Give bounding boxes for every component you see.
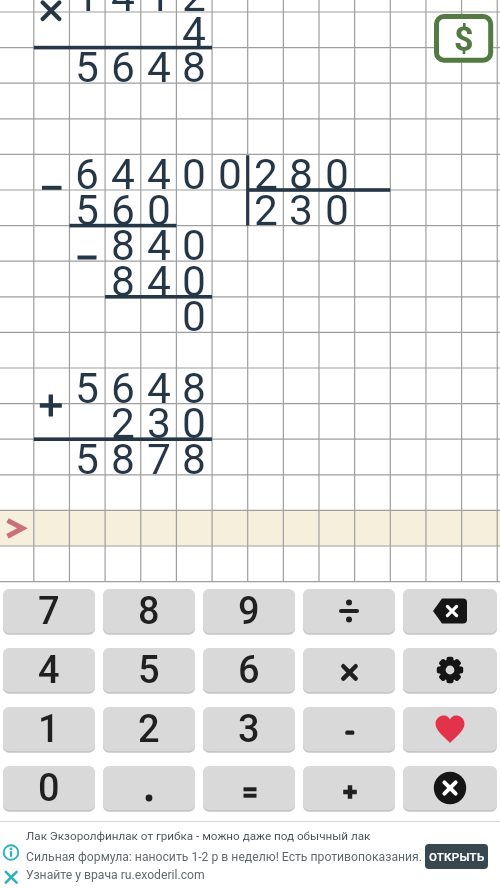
button[interactable] [303,589,395,633]
button[interactable] [403,766,497,810]
button[interactable] [303,648,395,692]
staticText: Узнайте у врача ru.exoderil.com [26,868,205,882]
button[interactable]: 7 [3,589,95,633]
staticText: 4 [147,221,171,271]
staticText: ОТКРЫТЬ [429,850,485,863]
button[interactable]: 4 [3,648,95,692]
staticText: 0 [182,221,206,271]
button[interactable]: $ [434,14,493,63]
staticText: 0 [182,150,206,200]
staticText: 6 [75,150,99,200]
button[interactable]: 5 [103,648,195,692]
button[interactable]: 9 [203,589,295,633]
staticText: 8 [111,435,135,485]
button[interactable] [203,766,295,810]
staticText: 5 [75,186,99,236]
staticText: 0 [325,186,349,236]
button[interactable] [403,648,497,692]
staticText: 6 [238,648,260,692]
staticText: 7 [147,435,171,485]
staticText: 8 [289,150,313,200]
staticText: 1 [75,0,99,22]
staticText: 6 [111,186,135,236]
staticText: 6 [111,43,135,93]
staticText: 0 [218,150,242,200]
button[interactable]: 6 [203,648,295,692]
staticText: 0 [38,766,60,810]
button[interactable]: 1 [3,707,95,751]
staticText: 5 [75,43,99,93]
staticText: 3 [147,399,171,449]
button[interactable]: 0 [3,766,95,810]
staticText: 6 [111,364,135,414]
staticText: 1 [38,707,60,751]
staticText: 3 [238,707,260,751]
staticText: Лак Экзоролфинлак от грибка - можно даже… [26,829,371,843]
staticText: Сильная формула: наносить 1-2 р в неделю… [26,850,423,864]
staticText: 4 [147,257,171,307]
staticText: 8 [182,364,206,414]
staticText: 8 [111,221,135,271]
staticText: 0 [182,257,206,307]
staticText: 9 [238,589,260,633]
staticText: 5 [75,364,99,414]
staticText: 4 [147,364,171,414]
staticText: 2 [182,0,206,22]
button[interactable]: 2 [103,707,195,751]
staticText: 4 [38,648,60,692]
staticText: 0 [182,399,206,449]
staticText: 0 [147,186,171,236]
staticText: 0 [325,150,349,200]
staticText: 8 [138,589,160,633]
staticText: 8 [182,43,206,93]
staticText: 7 [38,589,60,633]
button[interactable] [403,589,497,633]
button[interactable] [303,707,395,751]
staticText: 4 [111,150,135,200]
button[interactable]: 3 [203,707,295,751]
staticText: $ [454,18,474,58]
staticText: 5 [138,648,160,692]
staticText: 2 [254,186,278,236]
staticText: 8 [182,435,206,485]
staticText: 0 [182,292,206,342]
button[interactable] [403,707,497,751]
staticText: 5 [75,435,99,485]
button[interactable]: 8 [103,589,195,633]
staticText: 2 [111,399,135,449]
staticText: 4 [182,8,206,58]
staticText: 2 [254,150,278,200]
staticText: 2 [138,707,160,751]
staticText: 4 [147,150,171,200]
staticText: 3 [289,186,313,236]
staticText: 4 [147,43,171,93]
button[interactable] [303,766,395,810]
button[interactable] [103,766,195,810]
staticText: 8 [111,257,135,307]
staticText: 1 [147,0,171,22]
staticText: 4 [111,0,135,22]
button[interactable]: ОТКРЫТЬ [425,844,488,869]
